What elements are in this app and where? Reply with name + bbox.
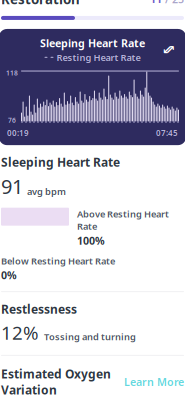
button[interactable]: Learn More [124,375,184,389]
staticText: Sleeping Heart Rate [40,36,145,50]
button[interactable]: Expand chart [159,40,178,59]
staticText: ↗ [165,43,175,56]
staticText: 0% [1,268,17,282]
staticText: 76 [8,116,16,125]
staticText: Learn More [124,375,184,389]
staticText: 100% [77,233,105,248]
staticText: / 25 [162,0,184,6]
staticText: 11 [150,0,162,6]
staticText: 00:19 [7,127,29,138]
staticText: 91 [1,173,23,200]
staticText: Resting Heart Rate [56,51,140,63]
staticText: 12% [1,320,39,345]
staticText: Restlessness [1,301,77,317]
staticText: avg bpm [27,185,66,198]
staticText: Below Resting Heart Rate [1,255,115,267]
staticText: Estimated Oxygen Variation [1,366,111,398]
staticText: Above Resting Heart Rate [77,208,169,232]
staticText: Tossing and turning [44,330,136,343]
staticText: Restoration [1,0,80,8]
staticText: ↙ [162,43,172,56]
staticText: 07:45 [156,127,178,138]
staticText: 118 [6,68,18,77]
staticText: Sleeping Heart Rate [1,154,120,170]
